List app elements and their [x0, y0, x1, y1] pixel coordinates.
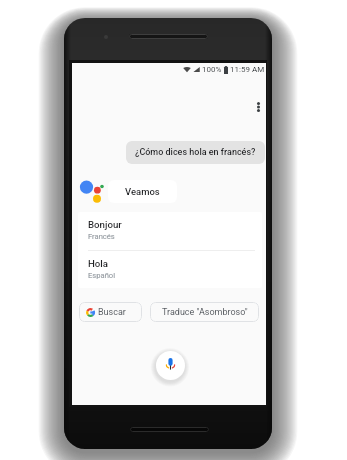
button[interactable]: Veamos — [108, 180, 177, 203]
staticText: Hola — [88, 258, 109, 269]
button[interactable]: Bonjour — [78, 212, 262, 250]
staticText: ¿Cómo dices hola en francés? — [135, 147, 256, 158]
staticText: Buscar — [98, 307, 126, 318]
button[interactable]: Traduce "Asombroso" — [150, 302, 259, 322]
staticText: Bonjour — [88, 219, 122, 230]
button[interactable]: Microphone — [156, 351, 185, 380]
button[interactable]: Buscar — [79, 302, 142, 322]
staticText: Francés — [88, 232, 115, 241]
staticText: Traduce "Asombroso" — [162, 307, 248, 318]
staticText: 11:59 AM — [230, 65, 265, 74]
staticText: Veamos — [125, 186, 160, 197]
button[interactable]: More options — [252, 97, 265, 117]
button[interactable]: Hola — [78, 251, 262, 288]
staticText: Español — [88, 271, 116, 280]
button[interactable]: ¿Cómo dices hola en francés? — [126, 141, 265, 164]
staticText: 100% — [202, 65, 222, 74]
